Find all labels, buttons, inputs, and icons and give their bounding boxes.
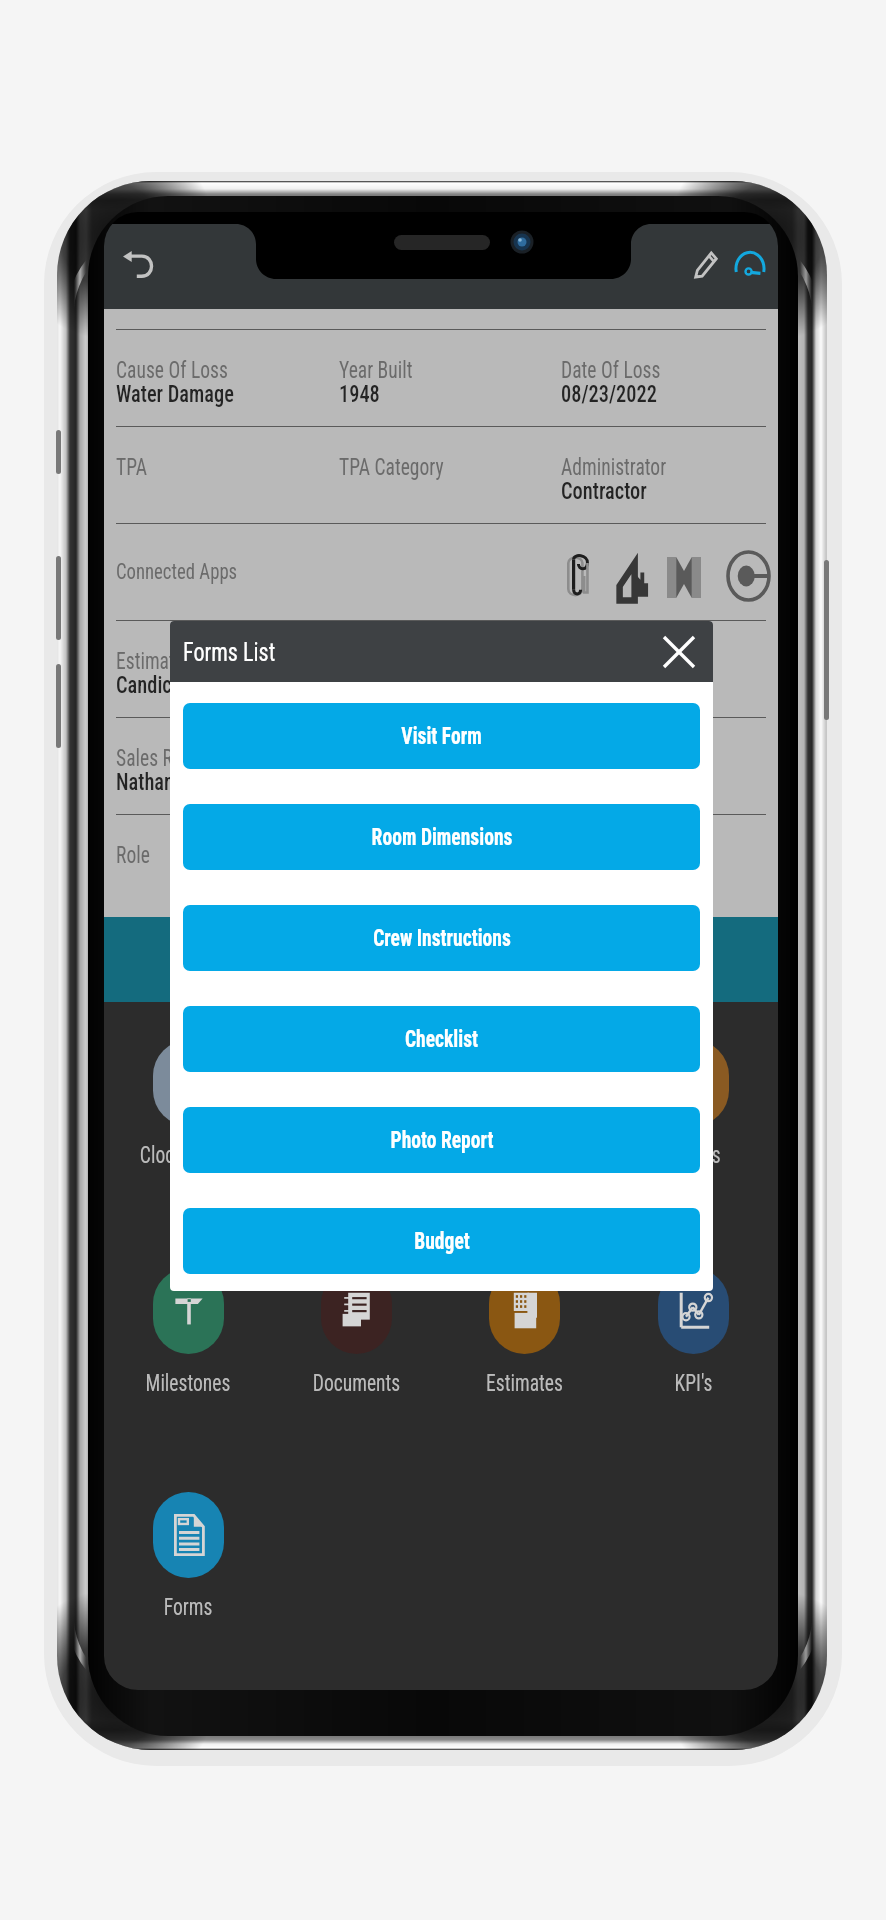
button[interactable]: Visit Form — [183, 703, 700, 769]
staticText: Water Damage — [116, 380, 234, 408]
button[interactable]: Photos — [609, 1040, 778, 1169]
button[interactable]: Contacts — [440, 1040, 609, 1169]
button[interactable]: Milestones — [104, 1268, 272, 1397]
staticText: Cause Of Loss — [116, 357, 228, 384]
staticText: Contractor — [561, 477, 647, 505]
staticText: Sales Rep — [116, 745, 192, 772]
button[interactable]: Clock In/Out — [104, 1040, 272, 1169]
staticText: Checklist — [404, 1026, 478, 1053]
staticText: Forms List — [183, 637, 276, 667]
button[interactable]: Forms — [104, 1492, 272, 1621]
staticText: Administrator — [561, 454, 666, 481]
staticText: Crew Instructions — [373, 925, 511, 952]
button[interactable]: Documents — [272, 1268, 440, 1397]
staticText: TPA Category — [339, 454, 444, 481]
button[interactable]: Edit — [682, 240, 730, 288]
button[interactable]: Back — [112, 238, 164, 290]
staticText: Photo Report — [390, 1127, 494, 1154]
button[interactable]: Crew Instructions — [183, 905, 700, 971]
staticText: Nathaniel Ross — [116, 768, 238, 796]
staticText: Room Dimensions — [371, 824, 513, 851]
staticText: Milestones — [145, 1370, 230, 1397]
staticText: Date Of Loss — [561, 357, 660, 384]
staticText: Role — [116, 842, 150, 869]
button[interactable]: Photo Report — [183, 1107, 700, 1173]
staticText: TPA — [116, 454, 147, 481]
staticText: Estimator — [116, 648, 191, 675]
staticText: Candice Turner — [116, 671, 238, 699]
button[interactable]: Budget — [183, 1208, 700, 1274]
staticText: Contacts — [490, 1142, 560, 1169]
staticText: 1948 — [339, 380, 380, 408]
button[interactable]: Encircle app — [555, 549, 601, 595]
staticText: Connected Apps — [116, 559, 238, 585]
staticText: Visit Form — [401, 723, 482, 750]
staticText: Documents — [313, 1370, 400, 1397]
staticText: 08/23/2022 — [561, 380, 657, 408]
staticText: Photos — [666, 1142, 721, 1169]
staticText: Year Built — [339, 357, 413, 384]
staticText: KPI's — [674, 1370, 713, 1397]
button[interactable]: KPI's — [609, 1268, 778, 1397]
button[interactable]: Sync app — [722, 546, 774, 598]
staticText: Budget — [414, 1228, 470, 1255]
button[interactable]: Checklist — [183, 1006, 700, 1072]
button[interactable]: Close — [659, 632, 699, 672]
staticText: Clock In/Out — [140, 1142, 236, 1169]
button[interactable]: Dashboard — [725, 243, 775, 293]
button[interactable]: Map app — [661, 549, 707, 595]
staticText: Forms — [163, 1594, 213, 1621]
button[interactable]: Notes — [272, 1040, 440, 1169]
button[interactable]: Room Dimensions — [183, 804, 700, 870]
button[interactable]: Estimates — [440, 1268, 609, 1397]
staticText: Estimates — [486, 1370, 563, 1397]
button[interactable]: Home app — [611, 549, 657, 595]
